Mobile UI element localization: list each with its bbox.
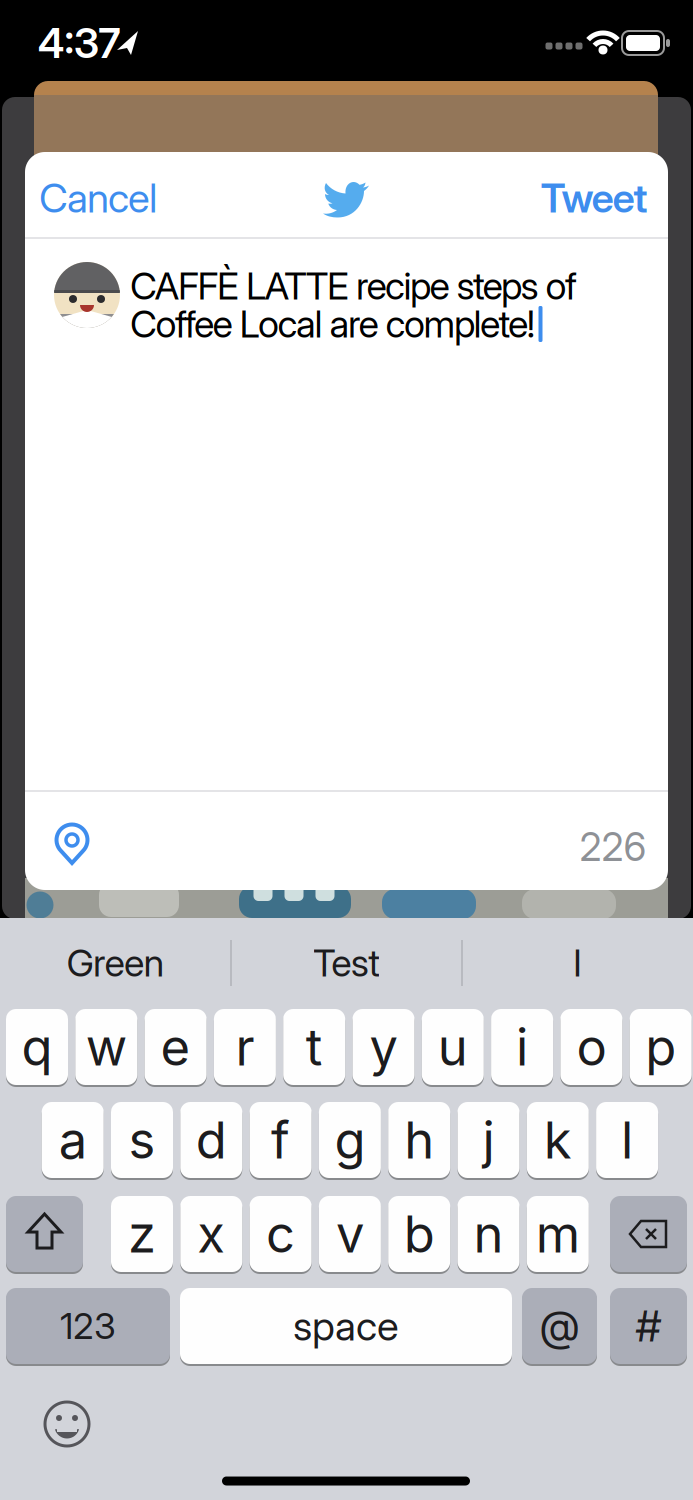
button[interactable]: a [42,1102,104,1178]
staticText: Coffee Local are complete! [130,302,535,346]
staticText: m [536,1204,580,1264]
staticText: j [482,1110,494,1170]
staticText: space [293,1302,399,1350]
button[interactable]: I [467,933,687,993]
staticText: s [128,1110,155,1170]
staticText [641,1204,655,1264]
button[interactable]: l [596,1102,658,1178]
button[interactable]: Cancel [39,174,157,222]
button[interactable]: p [630,1009,692,1085]
button[interactable]: y [352,1009,414,1085]
staticText: d [196,1110,227,1170]
button[interactable]: g [319,1102,381,1178]
staticText: v [336,1204,364,1264]
button[interactable]: s [111,1102,173,1178]
staticText: # [635,1301,662,1351]
button[interactable] [49,821,95,869]
button[interactable]: z [111,1196,173,1272]
button[interactable]: @ [522,1288,597,1364]
staticText: Test [313,941,380,985]
staticText: z [128,1204,156,1264]
button[interactable]: c [250,1196,312,1272]
button[interactable]: u [422,1009,484,1085]
button[interactable]: n [457,1196,519,1272]
staticText: w [86,1017,127,1077]
button[interactable]: Tweet [540,174,647,222]
button[interactable]: Green [5,933,225,993]
staticText: l [621,1110,633,1170]
staticText: k [544,1110,572,1170]
staticText: r [235,1017,254,1077]
button[interactable]: k [527,1102,589,1178]
button[interactable] [45,1402,89,1446]
staticText: n [473,1204,503,1264]
button[interactable]: f [250,1102,312,1178]
staticText: I [573,941,582,985]
staticText: u [438,1017,468,1077]
button[interactable]: r [214,1009,276,1085]
button[interactable]: w [75,1009,137,1085]
button[interactable]: o [560,1009,622,1085]
staticText: Tweet [540,174,647,222]
staticText: b [404,1204,435,1264]
button[interactable] [6,1196,83,1272]
staticText: y [369,1017,397,1077]
staticText: Cancel [39,174,157,222]
button[interactable]: # [610,1288,687,1364]
button[interactable]: m [527,1196,589,1272]
button[interactable]: h [388,1102,450,1178]
staticText: f [271,1110,290,1170]
staticText: @ [539,1301,580,1351]
staticText: x [197,1204,225,1264]
staticText: a [59,1110,87,1170]
button[interactable]: x [180,1196,242,1272]
staticText: q [21,1017,52,1077]
staticText: g [334,1110,365,1170]
staticText: i [516,1017,528,1077]
staticText: e [161,1017,191,1077]
button[interactable]: b [388,1196,450,1272]
staticText: p [645,1017,676,1077]
button[interactable] [610,1196,687,1272]
staticText: 226 [579,824,646,870]
staticText: o [576,1017,606,1077]
staticText: CAFFÈ LATTE recipe steps of [130,264,577,308]
button[interactable]: Test [236,933,456,993]
button[interactable]: t [283,1009,345,1085]
button[interactable]: d [180,1102,242,1178]
button[interactable]: v [319,1196,381,1272]
button[interactable]: 123 [6,1288,170,1364]
staticText: Green [66,941,164,985]
staticText: 123 [60,1305,116,1347]
staticText: 4:37 [38,19,120,67]
button[interactable]: q [6,1009,68,1085]
staticText: c [266,1204,295,1264]
button[interactable]: e [145,1009,207,1085]
staticText [37,1204,51,1264]
button[interactable]: i [491,1009,553,1085]
button[interactable]: space [180,1288,512,1364]
staticText: h [404,1110,434,1170]
staticText: t [306,1017,323,1077]
button[interactable]: j [457,1102,519,1178]
